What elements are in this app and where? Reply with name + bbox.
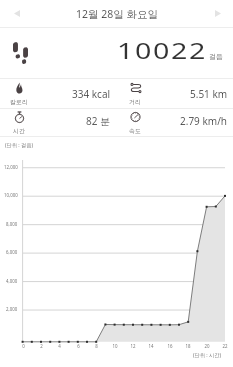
staticText: 4 (58, 343, 61, 349)
staticText: 거리 (129, 98, 141, 106)
button[interactable]: 시간 (0, 109, 116, 136)
staticText: 4,000 (6, 278, 18, 284)
button[interactable]: 거리 (116, 79, 233, 108)
staticText: 6 (77, 343, 80, 349)
staticText: 2 (40, 343, 43, 349)
staticText: 10 (112, 343, 118, 349)
staticText: (단위 : 시간) (193, 351, 221, 358)
staticText: 82 분 (86, 114, 111, 128)
staticText: 12,000 (4, 164, 18, 170)
staticText: 22 (222, 343, 228, 349)
staticText: 18 (185, 343, 191, 349)
button[interactable]: Next day (200, 0, 233, 27)
staticText: 12 (130, 343, 136, 349)
staticText: 10,000 (4, 192, 18, 198)
staticText: 16 (167, 343, 173, 349)
staticText: 2,000 (6, 306, 18, 312)
staticText: 10022 (117, 36, 207, 66)
staticText: 8 (95, 343, 98, 349)
staticText: 속도 (129, 127, 141, 135)
button[interactable]: Previous day (0, 0, 33, 27)
staticText: 20 (204, 343, 210, 349)
staticText: 걸음 (209, 52, 223, 61)
staticText: 12월 28일 화요일 (76, 7, 158, 21)
staticText: 2.79 km/h (180, 114, 228, 128)
staticText: 14 (148, 343, 154, 349)
staticText: 6,000 (6, 249, 18, 255)
staticText: (단위 : 걸음) (5, 141, 33, 148)
staticText: 8,000 (6, 221, 18, 227)
button[interactable]: 칼로리 (0, 79, 116, 108)
staticText: 5.51 km (190, 87, 228, 101)
staticText: 0 (22, 343, 25, 349)
staticText: 334 kcal (72, 87, 111, 101)
button[interactable]: 속도 (116, 109, 233, 136)
button[interactable]: 10022 (0, 28, 233, 78)
staticText: 칼로리 (10, 98, 28, 106)
staticText: 시간 (13, 127, 25, 135)
